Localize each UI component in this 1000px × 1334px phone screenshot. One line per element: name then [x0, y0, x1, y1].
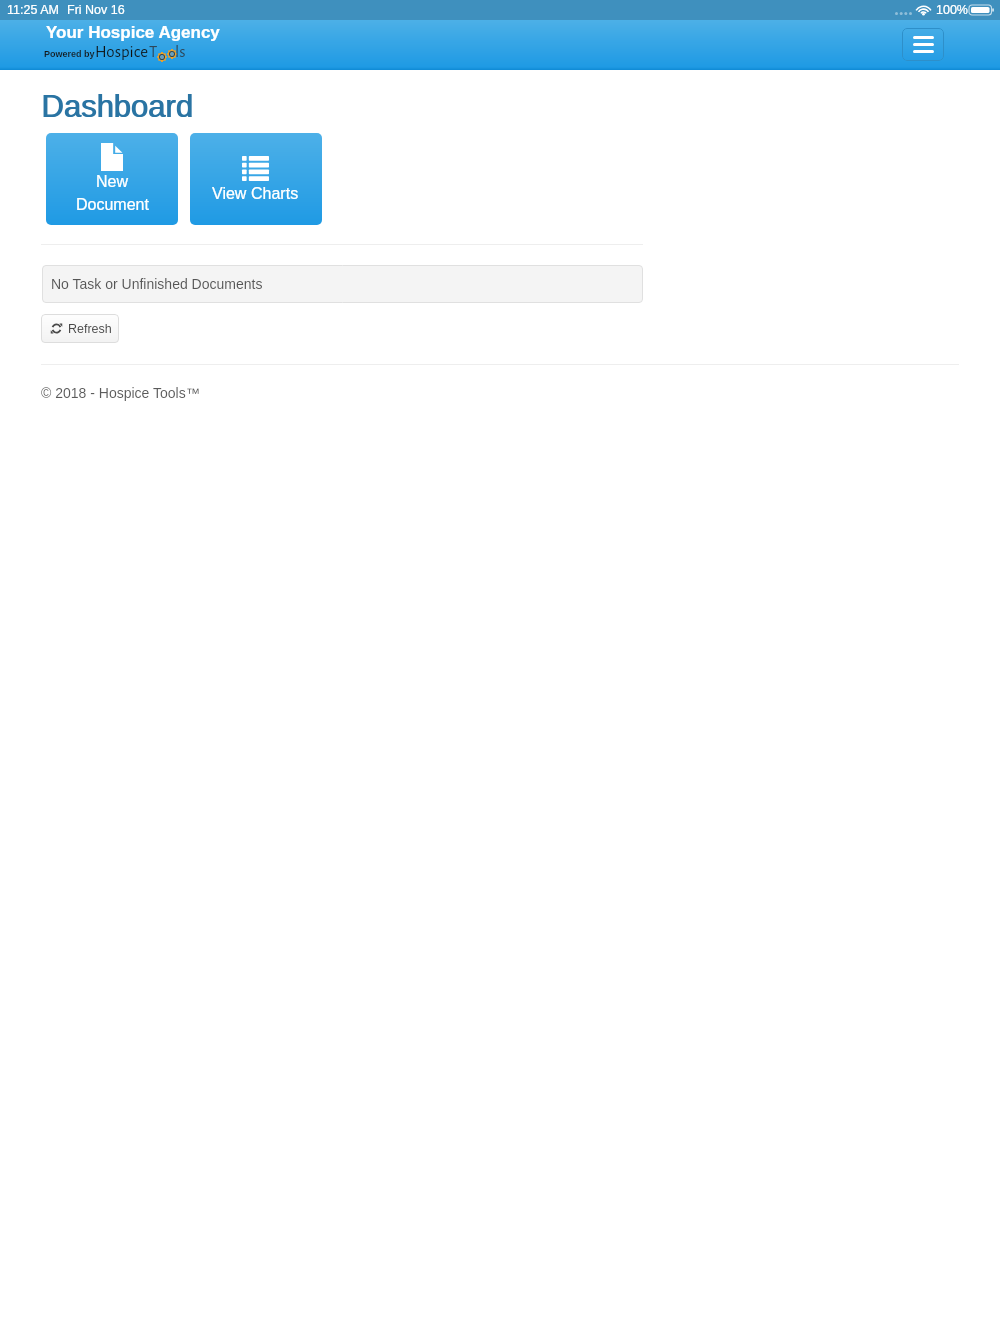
staticText: View: [212, 185, 247, 203]
staticText: New: [96, 173, 129, 191]
button[interactable]: View: [190, 133, 322, 225]
staticText: Refresh: [68, 322, 112, 336]
staticText: Powered by: [44, 49, 95, 59]
staticText: Dashboard: [41, 89, 193, 124]
staticText: Document: [76, 196, 149, 214]
staticText: Fri Nov 16: [67, 3, 125, 17]
staticText: Your Hospice Agency: [46, 23, 220, 42]
staticText: Dashboard: [42, 89, 194, 124]
staticText: Hospice: [95, 43, 149, 60]
button[interactable]: Menu: [902, 28, 944, 61]
staticText: ls: [175, 43, 186, 60]
staticText: Charts: [251, 185, 299, 203]
staticText: 100%: [936, 3, 968, 17]
button[interactable]: Refresh: [41, 314, 119, 343]
staticText: © 2018 - Hospice Tools™: [41, 385, 200, 401]
staticText: T: [149, 43, 158, 60]
staticText: No Task or Unfinished Documents: [51, 276, 263, 292]
button[interactable]: New: [46, 133, 178, 225]
staticText: 11:25 AM: [7, 3, 59, 17]
